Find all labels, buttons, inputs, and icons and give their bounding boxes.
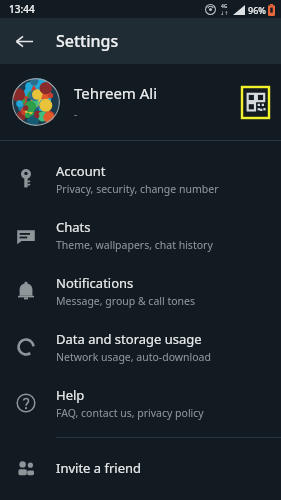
staticText: Tehreem Ali — [74, 83, 158, 103]
staticText: 96% — [248, 4, 266, 16]
button[interactable]: QR code — [242, 87, 269, 118]
staticText: Theme, wallpapers, chat history — [56, 238, 213, 252]
button[interactable]: Data and storage usage — [0, 319, 281, 375]
staticText: Message, group & call tones — [56, 294, 196, 308]
button[interactable]: Help — [0, 375, 281, 431]
button[interactable]: Notifications — [0, 263, 281, 319]
staticText: FAQ, contact us, privacy policy — [56, 406, 204, 420]
staticText: Invite a friend — [56, 459, 142, 477]
staticText: Privacy, security, change number — [56, 182, 219, 196]
staticText: Account — [56, 162, 106, 180]
staticText: Network usage, auto-download — [56, 350, 211, 364]
staticText: Settings — [56, 30, 119, 52]
button[interactable]: Invite a friend — [0, 444, 281, 492]
button[interactable]: Back — [6, 23, 42, 59]
staticText: Data and storage usage — [56, 330, 202, 348]
staticText: ↓↑ — [220, 10, 229, 16]
button[interactable]: Tehreem Ali — [0, 64, 281, 140]
button[interactable]: Chats — [0, 207, 281, 263]
staticText: 13:44 — [9, 2, 35, 16]
staticText: - — [74, 107, 78, 121]
staticText: Chats — [56, 218, 91, 236]
staticText: Help — [56, 386, 85, 404]
staticText: 4G — [221, 3, 228, 10]
staticText: Notifications — [56, 274, 134, 292]
button[interactable]: Account — [0, 151, 281, 207]
